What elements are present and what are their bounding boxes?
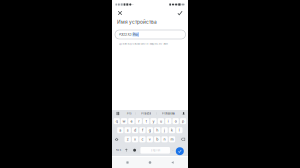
- staticText: f: [142, 128, 143, 132]
- button[interactable]: Close: [113, 9, 126, 17]
- staticText: j: [164, 128, 165, 132]
- button[interactable]: Back: [165, 157, 179, 168]
- staticText: Professional: [162, 112, 175, 115]
- button[interactable]: w: [121, 118, 127, 124]
- staticText: h: [156, 128, 158, 132]
- button[interactable]: j: [161, 127, 168, 133]
- button[interactable]: i: [165, 118, 171, 124]
- staticText: l: [179, 128, 180, 132]
- button[interactable]: Shift: [113, 136, 120, 142]
- staticText: p: [182, 119, 184, 123]
- button[interactable]: Emoji: [132, 147, 137, 153]
- button[interactable]: Professional: [157, 109, 180, 117]
- button[interactable]: Pro: [122, 109, 135, 117]
- staticText: w: [122, 119, 125, 123]
- button[interactable]: Recent apps: [120, 157, 134, 168]
- button[interactable]: a: [117, 127, 123, 133]
- button[interactable]: z: [125, 136, 131, 142]
- button[interactable]: s: [125, 127, 131, 133]
- button[interactable]: t: [143, 118, 149, 124]
- button[interactable]: q: [113, 118, 120, 124]
- button[interactable]: r: [136, 118, 142, 124]
- button[interactable]: o: [172, 118, 179, 124]
- staticText: g: [149, 128, 151, 132]
- button[interactable]: l: [176, 127, 182, 133]
- staticText: ?123: [116, 149, 122, 152]
- button[interactable]: v: [147, 136, 153, 142]
- staticText: m: [170, 137, 173, 141]
- staticText: r: [138, 119, 139, 123]
- button[interactable]: Backspace: [180, 136, 186, 142]
- staticText: t: [146, 119, 147, 123]
- staticText: q: [116, 119, 118, 123]
- staticText: Projector: [141, 112, 151, 115]
- staticText: k: [171, 128, 173, 132]
- staticText: b: [156, 137, 158, 141]
- staticText: Имя устройства: [117, 19, 157, 25]
- button[interactable]: n: [161, 136, 168, 142]
- button[interactable]: Space: [140, 147, 170, 154]
- staticText: d: [134, 128, 136, 132]
- staticText: s: [127, 128, 129, 132]
- button[interactable]: Enter: [176, 147, 184, 155]
- staticText: e: [130, 119, 132, 123]
- staticText: c: [141, 137, 143, 141]
- staticText: v: [149, 137, 151, 141]
- staticText: a: [119, 128, 121, 132]
- button[interactable]: x: [132, 136, 138, 142]
- button[interactable]: Projector: [136, 109, 157, 117]
- button[interactable]: f: [139, 127, 145, 133]
- staticText: .: [172, 148, 173, 152]
- button[interactable]: d: [132, 127, 138, 133]
- button[interactable]: e: [128, 118, 134, 124]
- staticText: u: [160, 119, 162, 123]
- button[interactable]: m: [169, 136, 175, 142]
- staticText: n: [164, 137, 166, 141]
- staticText: z: [127, 137, 129, 141]
- staticText: English: [151, 149, 160, 152]
- button[interactable]: Symbols: [124, 147, 129, 153]
- staticText: i: [168, 119, 169, 123]
- button[interactable]: ?123: [114, 147, 123, 153]
- button[interactable]: Home: [143, 157, 157, 168]
- staticText: y: [152, 119, 154, 123]
- button[interactable]: c: [139, 136, 145, 142]
- button[interactable]: Keyboard options: [113, 109, 122, 117]
- button[interactable]: Voice input: [181, 109, 187, 117]
- button[interactable]: k: [169, 127, 175, 133]
- staticText: Pro: [127, 112, 131, 115]
- staticText: Другие устройства смогут увидеть это имя: [118, 42, 167, 45]
- button[interactable]: b: [154, 136, 160, 142]
- staticText: Pro: [133, 33, 138, 36]
- staticText: o: [175, 119, 177, 123]
- button[interactable]: p: [180, 118, 186, 124]
- staticText: POCO X3: [118, 33, 132, 36]
- button[interactable]: y: [150, 118, 157, 124]
- button[interactable]: u: [158, 118, 164, 124]
- button[interactable]: h: [154, 127, 160, 133]
- button[interactable]: g: [147, 127, 153, 133]
- staticText: x: [134, 137, 136, 141]
- button[interactable]: Save: [173, 9, 186, 17]
